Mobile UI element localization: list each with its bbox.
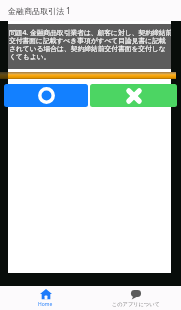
staticText: このアプリについて <box>112 301 160 308</box>
button[interactable]: Wrong - batsu <box>90 84 177 107</box>
staticText: 問題4. 金融商品取引業者は、顧客に対し、契約締結前 交付書面に記載すべき事項が… <box>9 28 171 61</box>
button[interactable]: このアプリについて <box>90 286 181 310</box>
staticText: Home <box>38 301 53 308</box>
button[interactable]: Correct - maru <box>4 84 88 107</box>
staticText: 金融商品取引法 1 <box>8 5 71 16</box>
button[interactable]: Home <box>0 286 90 310</box>
